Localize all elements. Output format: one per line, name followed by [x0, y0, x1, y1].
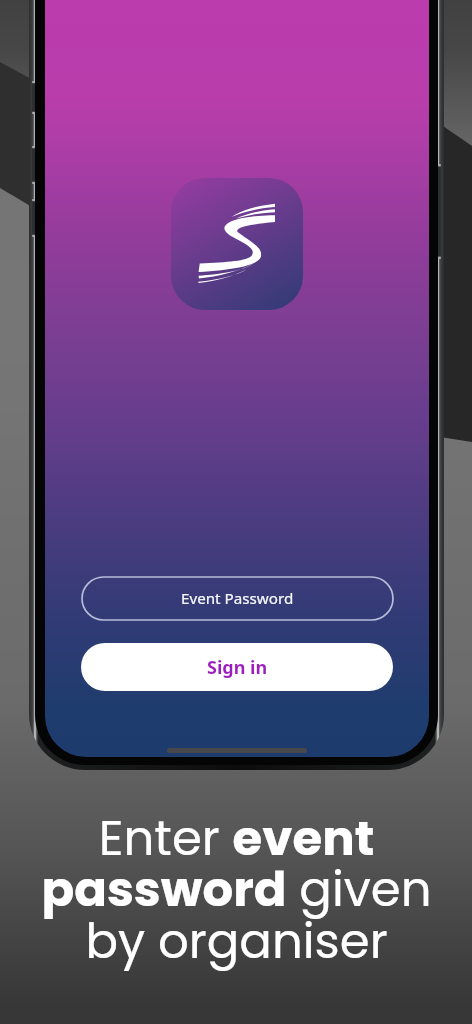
button[interactable]: Event Password [82, 577, 393, 620]
button[interactable]: Sign in [81, 643, 393, 691]
staticText: Event Password [181, 588, 294, 609]
staticText: Sign in [207, 655, 268, 680]
staticText: Enter event password given by organiser [41, 804, 432, 975]
